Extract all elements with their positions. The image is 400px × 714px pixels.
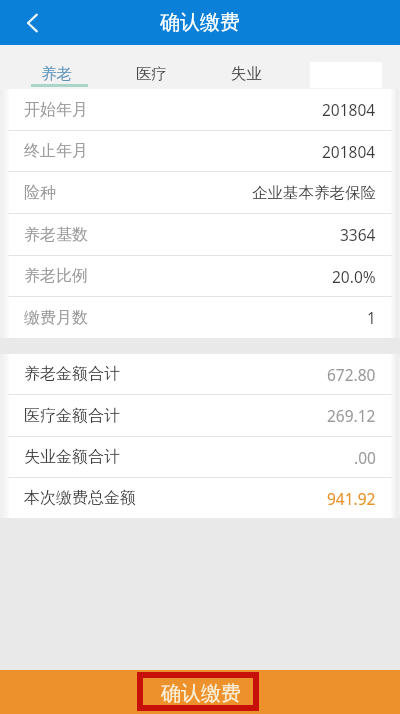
staticText: 养老基数 <box>24 225 88 245</box>
staticText: 养老比例 <box>24 266 88 286</box>
button[interactable]: 失业金额合计 <box>0 437 400 478</box>
staticText: 失业金额合计 <box>24 447 120 467</box>
staticText: 养老 <box>41 64 73 84</box>
staticText: 失业 <box>231 64 263 84</box>
staticText: 3364 <box>340 224 376 245</box>
staticText: 医疗金额合计 <box>24 406 120 426</box>
button[interactable]: 养老基数 <box>0 214 400 256</box>
staticText: .00 <box>354 447 376 468</box>
staticText: 确认缴费 <box>160 10 240 35</box>
button[interactable]: 医疗 <box>104 58 199 89</box>
button[interactable]: 失业 <box>199 58 294 89</box>
staticText: 确认缴费 <box>161 681 241 706</box>
staticText: 201804 <box>322 141 376 162</box>
button[interactable]: 确认缴费 <box>0 670 400 714</box>
button[interactable]: 开始年月 <box>0 89 400 131</box>
staticText: 941.92 <box>327 488 376 509</box>
button[interactable]: 缴费月数 <box>0 297 400 338</box>
button[interactable]: 险种 <box>0 172 400 214</box>
staticText: 本次缴费总金额 <box>24 488 136 508</box>
button[interactable]: 医疗金额合计 <box>0 395 400 437</box>
staticText: 终止年月 <box>24 141 88 161</box>
button[interactable]: 养老 <box>9 58 104 89</box>
button[interactable]: 本次缴费总金额 <box>0 478 400 518</box>
staticText: 养老金额合计 <box>24 364 120 384</box>
staticText: 20.0% <box>332 266 376 287</box>
staticText: 医疗 <box>136 64 168 84</box>
staticText: 672.80 <box>327 364 376 385</box>
button[interactable]: Back <box>10 1 54 45</box>
button[interactable]: 养老比例 <box>0 256 400 297</box>
staticText: 企业基本养老保险 <box>252 183 376 203</box>
staticText: 险种 <box>24 183 56 203</box>
staticText: 开始年月 <box>24 100 88 120</box>
button[interactable]: 终止年月 <box>0 131 400 172</box>
button[interactable]: 养老金额合计 <box>0 354 400 395</box>
staticText: 缴费月数 <box>24 308 88 328</box>
staticText: 201804 <box>322 99 376 120</box>
staticText: 269.12 <box>327 405 376 426</box>
staticText: 1 <box>367 307 376 328</box>
